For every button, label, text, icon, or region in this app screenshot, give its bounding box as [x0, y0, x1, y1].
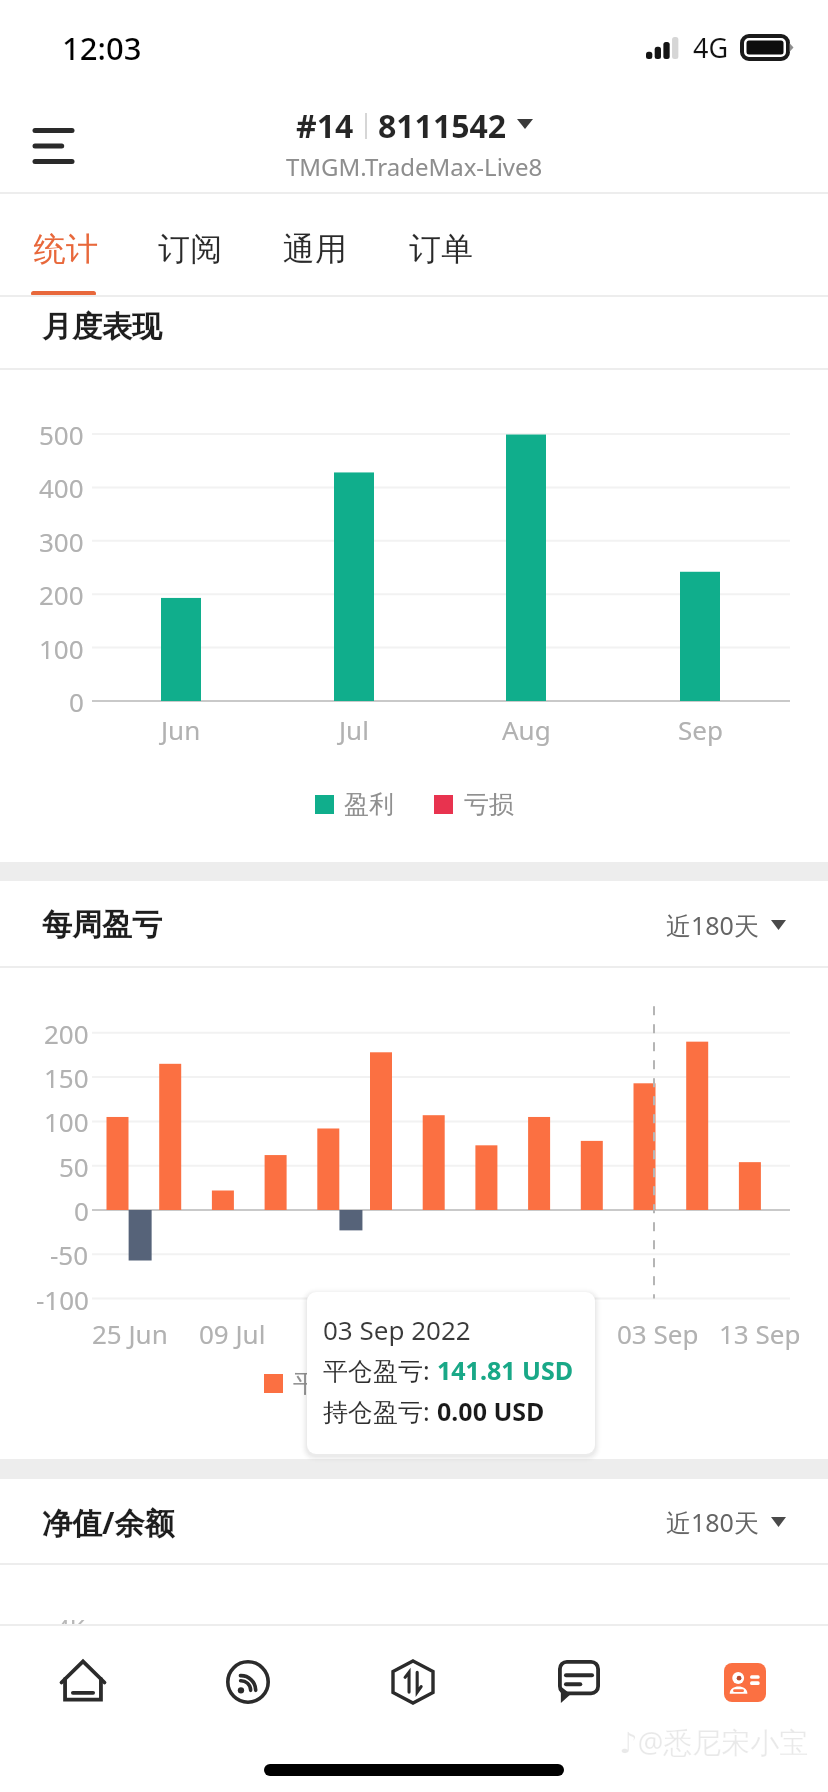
- staticText: 平仓盈亏: [293, 1368, 393, 1399]
- button[interactable]: 订单: [393, 192, 489, 297]
- staticText: 每周盈亏: [42, 906, 162, 944]
- staticText: 12:03: [62, 27, 142, 69]
- staticText: 持仓盈亏:: [323, 1394, 437, 1428]
- staticText: 0: [69, 684, 84, 718]
- staticText: 盈利: [344, 789, 394, 820]
- staticText: 4K: [56, 1611, 85, 1624]
- button[interactable]: #14: [286, 104, 543, 183]
- staticText: 亏损: [464, 789, 514, 820]
- staticText: 100: [44, 1104, 89, 1138]
- button[interactable]: Signals: [165, 1626, 330, 1738]
- staticText: 03 Sep: [617, 1316, 699, 1351]
- staticText: 0: [74, 1193, 89, 1227]
- staticText: 200: [44, 1016, 89, 1050]
- staticText: #14: [296, 104, 354, 148]
- staticText: 03 Sep 2022: [323, 1312, 471, 1346]
- button[interactable]: Home: [0, 1626, 165, 1738]
- staticText: 近180天: [666, 908, 759, 942]
- staticText: 100: [39, 631, 84, 665]
- staticText: 09 Jul: [199, 1316, 266, 1351]
- staticText: 150: [44, 1060, 89, 1094]
- button[interactable]: 订阅: [142, 192, 238, 297]
- staticText: Aug: [502, 712, 551, 747]
- button[interactable]: 通用: [267, 192, 363, 297]
- staticText: 8111542: [378, 104, 507, 148]
- staticText: ♪@悉尼宋小宝: [619, 1722, 809, 1762]
- staticText: 400: [39, 470, 84, 504]
- staticText: 0.00 USD: [437, 1394, 545, 1428]
- button[interactable]: Trade: [330, 1626, 496, 1738]
- button[interactable]: 近180天: [666, 908, 786, 942]
- staticText: 300: [39, 524, 84, 558]
- button[interactable]: Messages: [496, 1626, 662, 1738]
- staticText: Jul: [339, 712, 369, 747]
- staticText: 订阅: [158, 229, 222, 269]
- staticText: 200: [39, 577, 84, 611]
- staticText: TMGM.TradeMax-Live8: [286, 150, 543, 183]
- staticText: 统计: [34, 229, 98, 269]
- button[interactable]: 统计: [18, 192, 114, 297]
- button[interactable]: Profile: [662, 1626, 828, 1738]
- staticText: 净值/余额: [42, 1502, 175, 1543]
- staticText: 141.81 USD: [437, 1353, 574, 1387]
- staticText: -50: [50, 1237, 89, 1271]
- staticText: 通用: [283, 229, 347, 269]
- staticText: 50: [59, 1149, 89, 1183]
- staticText: 4G: [693, 29, 729, 66]
- staticText: 平仓盈亏:: [323, 1353, 437, 1387]
- staticText: 月度表现: [42, 308, 162, 346]
- staticText: 近180天: [666, 1505, 759, 1539]
- staticText: 25 Jun: [92, 1316, 168, 1351]
- staticText: 订单: [409, 229, 473, 269]
- button[interactable]: 近180天: [666, 1505, 786, 1539]
- button[interactable]: Menu: [16, 107, 90, 181]
- staticText: 500: [39, 417, 84, 451]
- staticText: Jun: [161, 712, 201, 747]
- staticText: 13 Sep: [719, 1316, 801, 1351]
- staticText: -100: [36, 1282, 89, 1316]
- staticText: Sep: [678, 712, 723, 747]
